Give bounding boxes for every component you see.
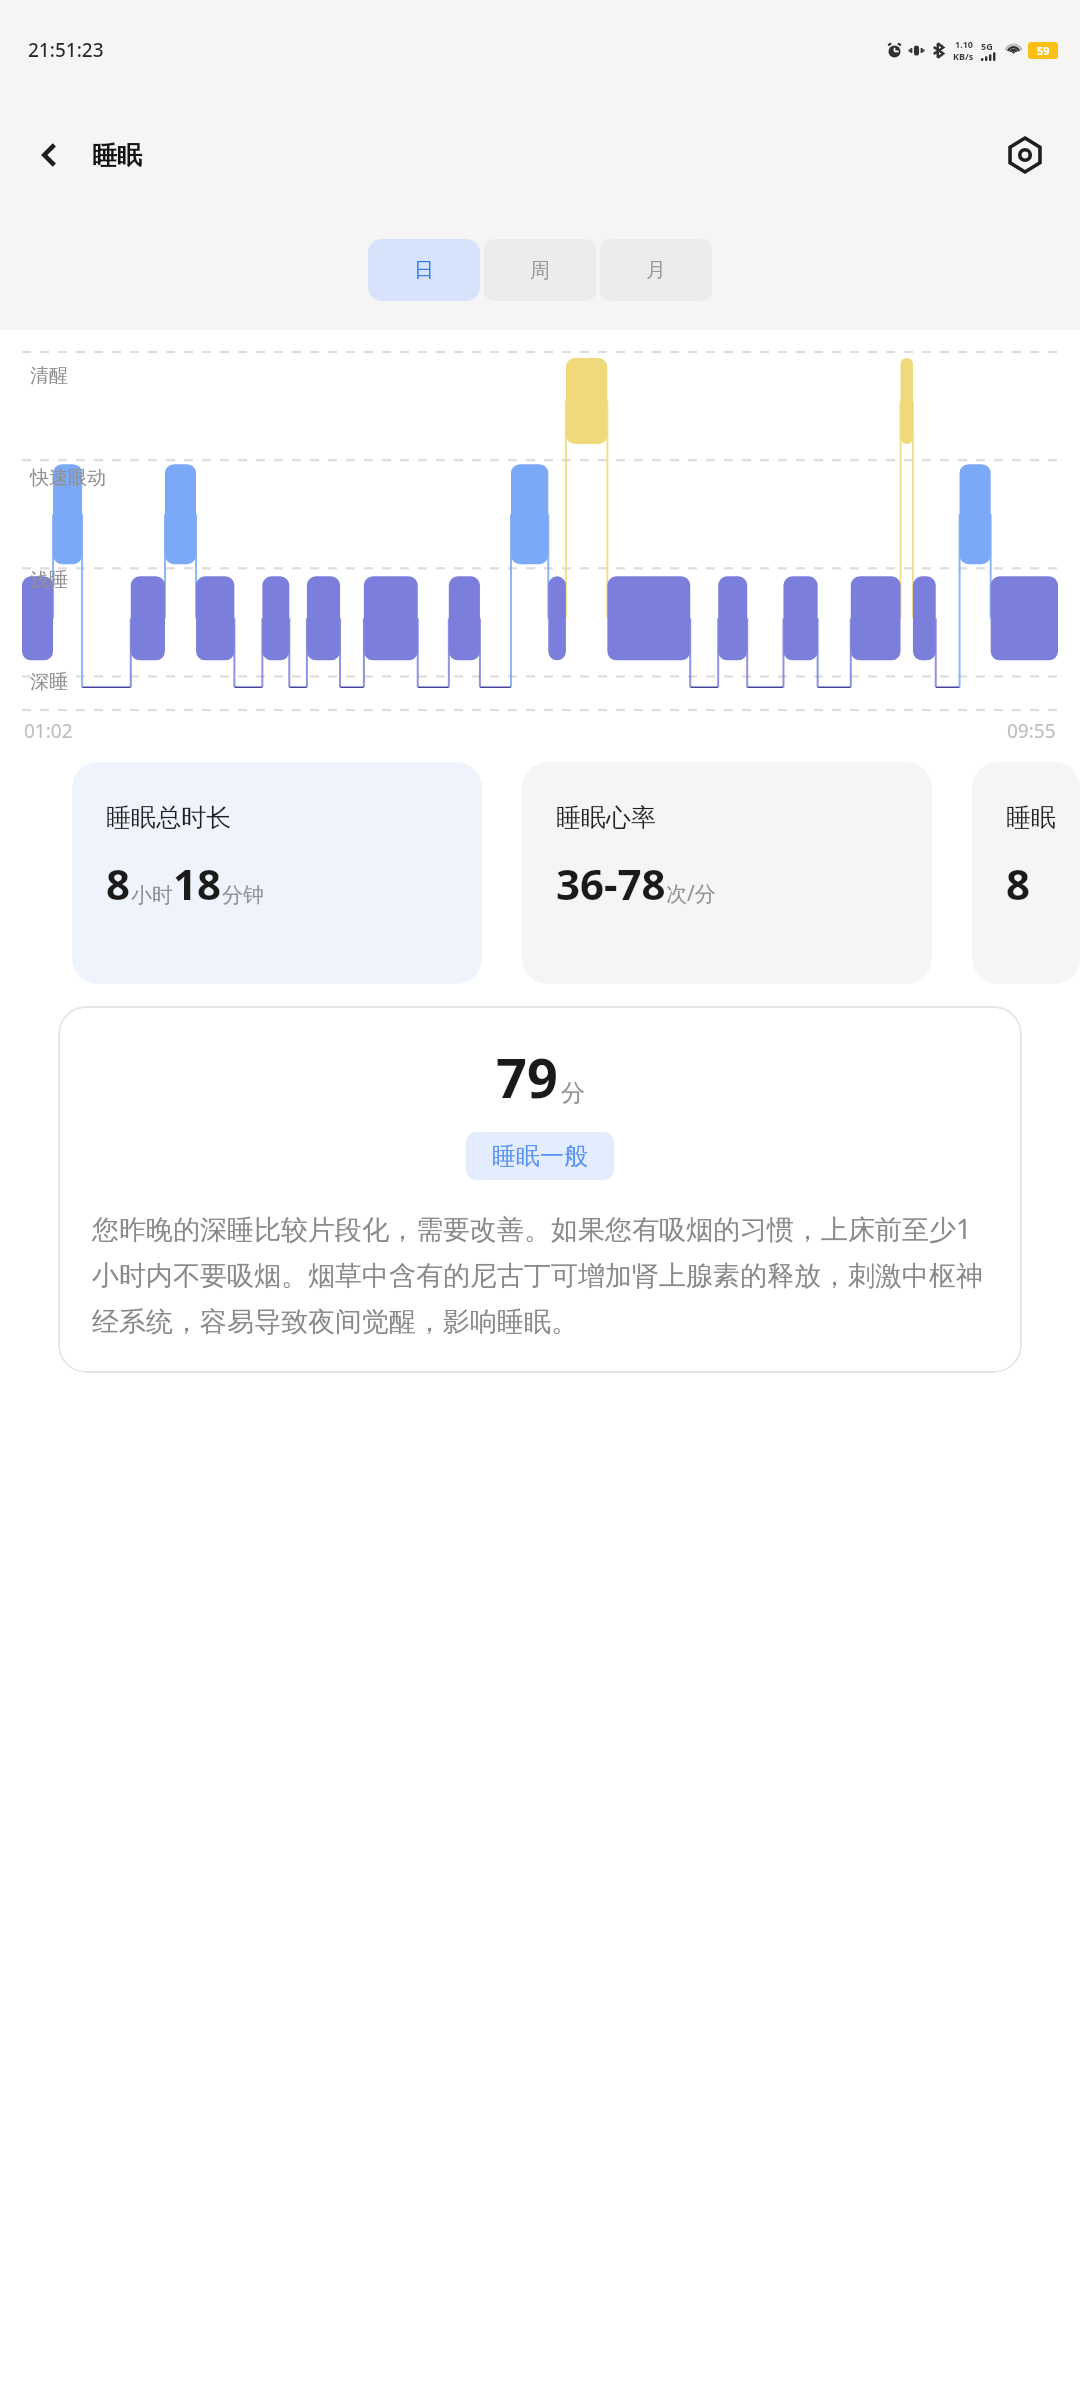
staticText: 01:02 (24, 718, 73, 744)
button[interactable]: Back (20, 125, 80, 185)
button[interactable]: 睡眠心率 (522, 762, 932, 984)
staticText: 1.10 (955, 38, 973, 50)
staticText: 睡眠 (1006, 802, 1056, 833)
button[interactable]: 79 (58, 1006, 1022, 1373)
staticText: 您昨晚的深睡比较片段化，需要改善。如果您有吸烟的习惯，上床前至少1小时内不要吸烟… (92, 1210, 988, 1339)
button[interactable]: 睡眠 (972, 762, 1080, 984)
staticText: 21:51:23 (28, 37, 104, 63)
staticText: 睡眠 (92, 140, 142, 171)
staticText: 睡眠总时长 (106, 802, 231, 833)
staticText: 8 (106, 855, 131, 912)
staticText: KB/s (953, 50, 974, 62)
staticText: 睡眠一般 (492, 1141, 588, 1171)
staticText: 8 (1006, 855, 1031, 912)
staticText: 月 (646, 258, 666, 283)
button[interactable]: 周 (484, 239, 596, 301)
staticText: 浅睡 (30, 568, 68, 592)
button[interactable]: 月 (600, 239, 712, 301)
staticText: 小时 (131, 882, 173, 908)
staticText: 79 (496, 1040, 558, 1114)
staticText: 36-78 (556, 855, 666, 912)
staticText: 分钟 (222, 882, 264, 908)
staticText: 5G (981, 40, 993, 52)
staticText: 周 (530, 258, 550, 283)
button[interactable]: 睡眠总时长 (72, 762, 482, 984)
staticText: 睡眠心率 (556, 802, 656, 833)
button[interactable]: 日 (368, 239, 480, 301)
staticText: 次/分 (666, 879, 716, 908)
staticText: 日 (414, 258, 434, 283)
staticText: 深睡 (30, 670, 68, 694)
staticText: 清醒 (30, 364, 68, 388)
staticText: 分 (561, 1078, 585, 1108)
button[interactable]: Settings (994, 124, 1056, 186)
staticText: 09:55 (1007, 718, 1056, 744)
staticText: 快速眼动 (30, 466, 106, 490)
staticText: 59 (1037, 43, 1050, 58)
staticText: 18 (173, 855, 222, 912)
